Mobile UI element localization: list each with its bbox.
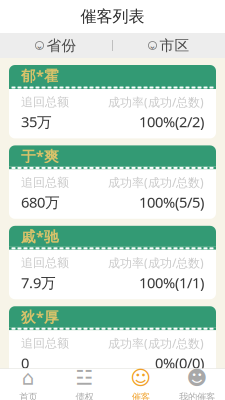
- staticText: 追回总额: [21, 95, 69, 109]
- button[interactable]: ☺: [112, 362, 169, 400]
- staticText: 成功率(成功/总数): [108, 255, 204, 271]
- staticText: 郁*霍: [21, 66, 59, 85]
- staticText: 追回总额: [21, 336, 69, 350]
- staticText: 狄*厚: [21, 307, 59, 326]
- button[interactable]: ☳: [56, 362, 112, 400]
- staticText: ⌄: [148, 40, 156, 51]
- staticText: 追回总额: [21, 175, 69, 190]
- staticText: 省份: [46, 36, 76, 54]
- staticText: ☻: [186, 366, 207, 389]
- staticText: ☳: [75, 366, 93, 389]
- staticText: 市区: [159, 36, 189, 54]
- button[interactable]: ⌄: [0, 33, 112, 58]
- staticText: 首页: [19, 391, 37, 400]
- staticText: 戚*驰: [21, 227, 59, 246]
- staticText: 龚*毅: [21, 387, 59, 400]
- staticText: 100%(1/1): [139, 273, 204, 292]
- staticText: 0%(0/0): [155, 353, 204, 373]
- staticText: 成功率(成功/总数): [108, 174, 204, 190]
- button[interactable]: 郁*霍: [9, 65, 216, 138]
- staticText: 0: [21, 353, 29, 373]
- staticText: 成功率(成功/总数): [108, 94, 204, 110]
- staticText: 成功率(成功/总数): [108, 335, 204, 351]
- button[interactable]: 龚*毅: [9, 387, 216, 400]
- staticText: ☺: [130, 366, 151, 389]
- staticText: 680万: [21, 192, 60, 212]
- staticText: 于*爽: [21, 146, 59, 166]
- staticText: 催客: [132, 391, 150, 400]
- staticText: 催客列表: [80, 7, 144, 26]
- staticText: 我的催客: [179, 391, 215, 400]
- button[interactable]: ⌄: [113, 33, 225, 58]
- staticText: 100%(2/2): [139, 112, 204, 131]
- button[interactable]: ☻: [169, 362, 225, 400]
- staticText: ⌄: [35, 40, 43, 51]
- staticText: 35万: [21, 112, 52, 131]
- button[interactable]: 于*爽: [9, 145, 216, 219]
- button[interactable]: 狄*厚: [9, 306, 216, 380]
- button[interactable]: 戚*驰: [9, 226, 216, 299]
- staticText: 追回总额: [21, 255, 69, 270]
- staticText: 7.9万: [21, 273, 56, 292]
- button[interactable]: ⌂: [0, 362, 56, 400]
- staticText: 100%(5/5): [139, 192, 204, 212]
- staticText: 债权: [75, 391, 93, 400]
- staticText: ⌂: [22, 366, 35, 389]
